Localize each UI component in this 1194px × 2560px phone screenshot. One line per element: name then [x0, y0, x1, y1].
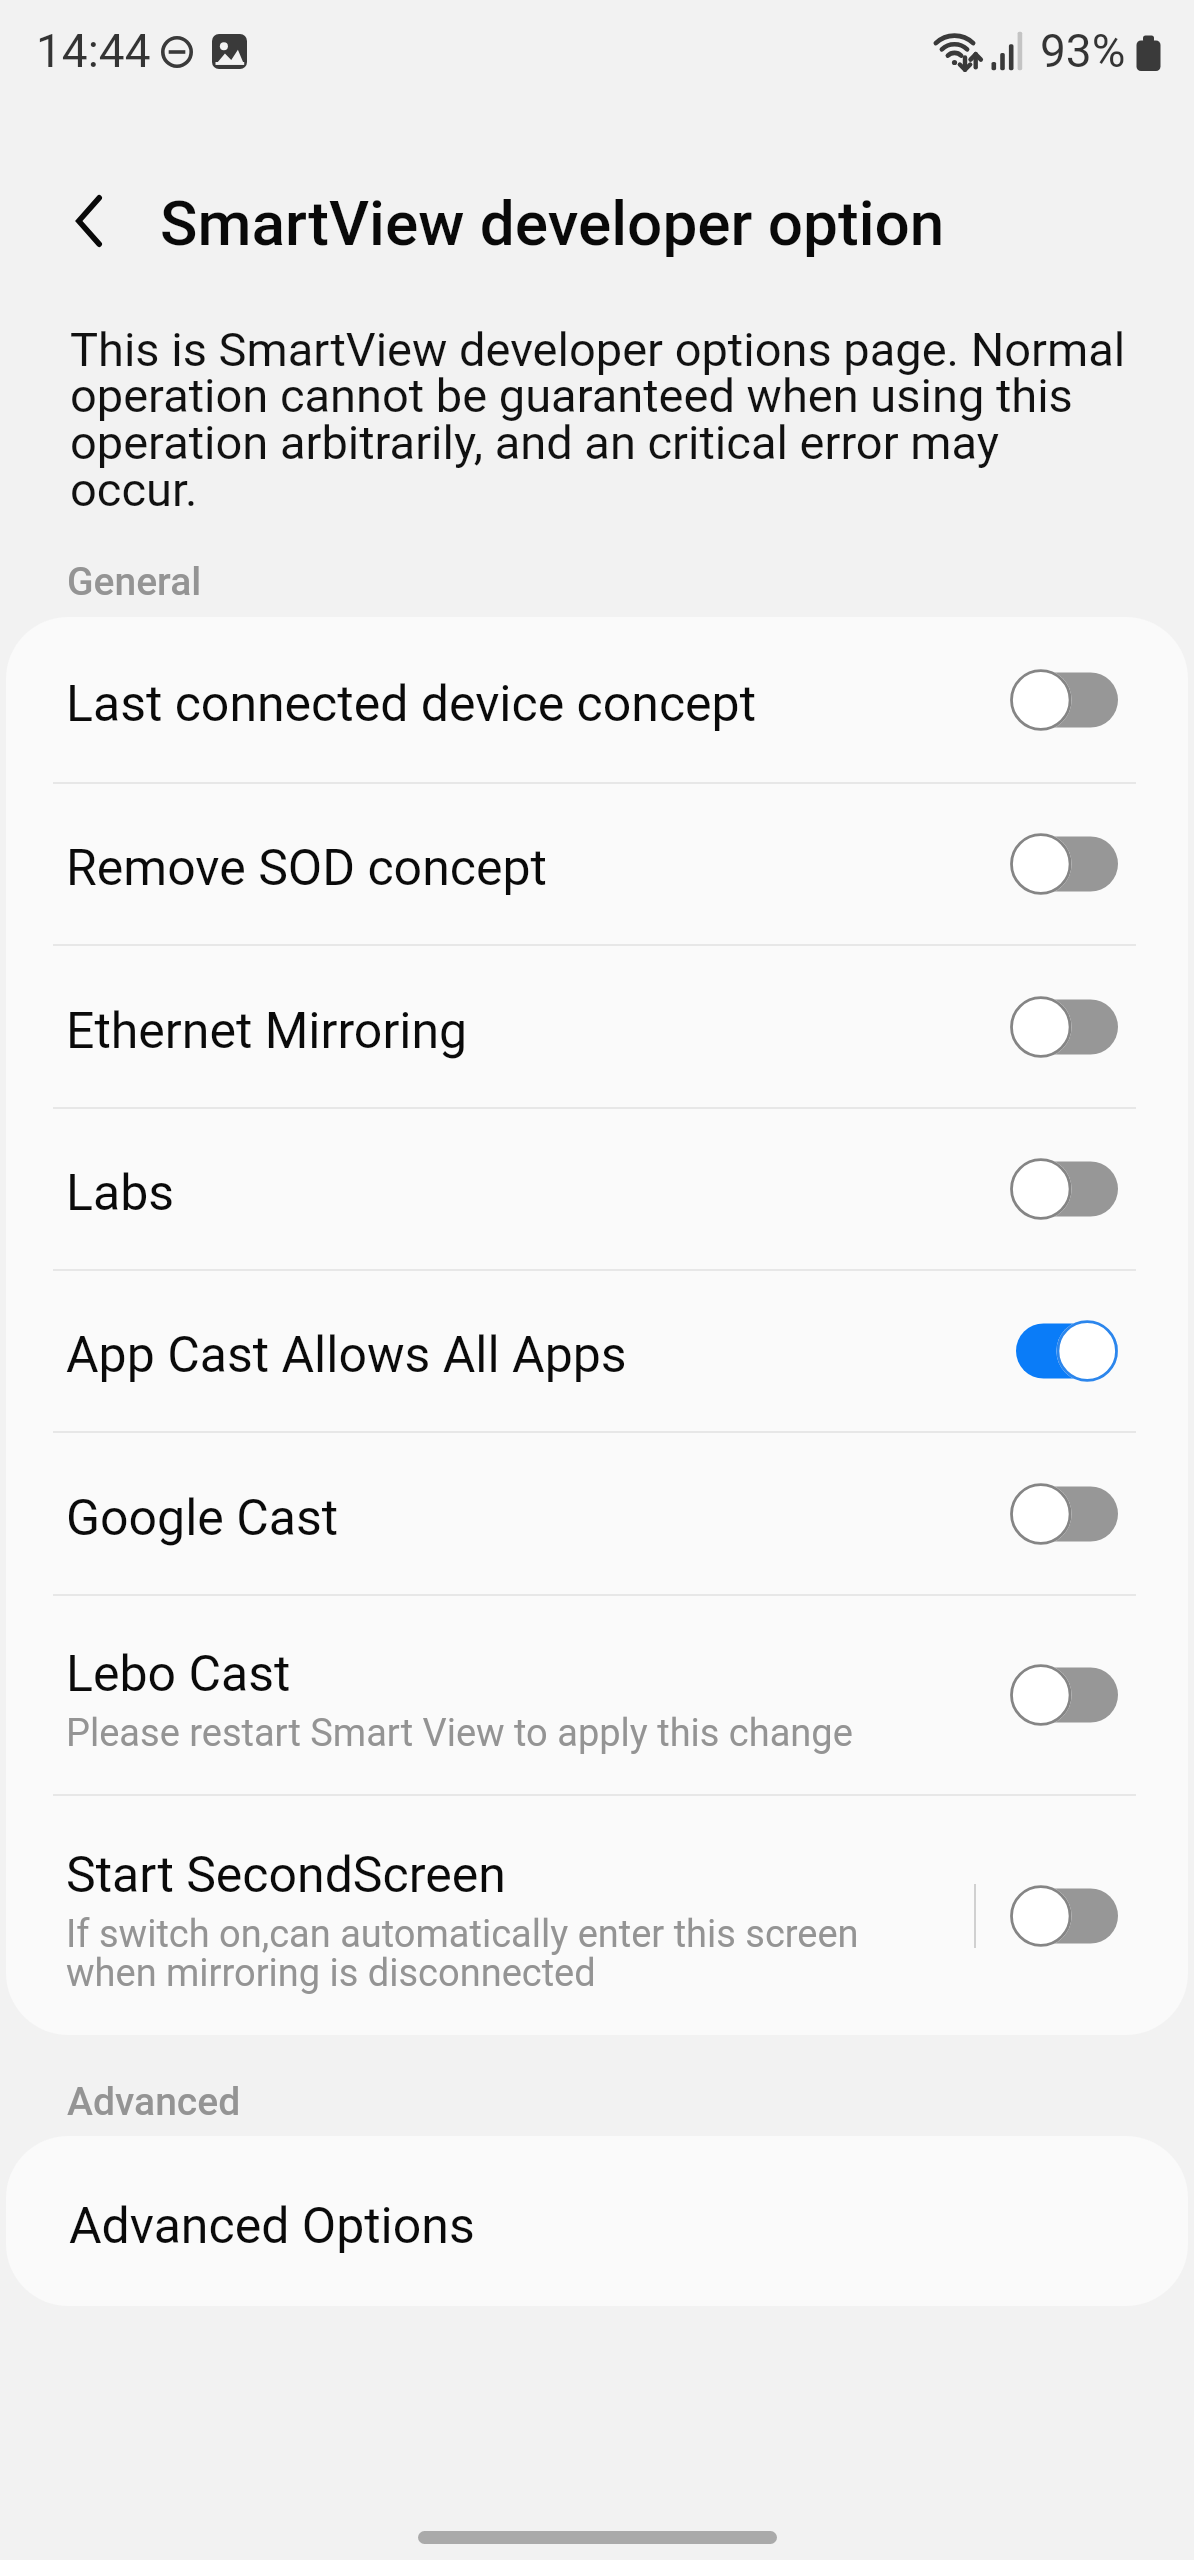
staticText: This is SmartView developer options page… — [70, 322, 1126, 517]
staticText: If switch on,can automatically enter thi… — [66, 1916, 906, 1994]
button[interactable]: Toggle off — [1010, 995, 1118, 1059]
button[interactable]: Toggle off — [1010, 1663, 1118, 1727]
button[interactable]: Toggle off — [1010, 1482, 1118, 1546]
staticText: General — [67, 559, 202, 605]
button[interactable]: Last connected device concept — [6, 617, 1188, 782]
button[interactable]: Toggle on — [1010, 1319, 1118, 1383]
staticText: Labs — [66, 1166, 175, 1222]
button[interactable]: Ethernet Mirroring — [6, 946, 1188, 1107]
staticText: Ethernet Mirroring — [66, 1004, 468, 1060]
staticText: Remove SOD concept — [66, 841, 547, 897]
button[interactable]: Toggle off — [1010, 832, 1118, 896]
staticText: Start SecondScreen — [66, 1848, 506, 1904]
staticText: Advanced — [67, 2079, 241, 2125]
staticText: App Cast Allows All Apps — [66, 1328, 627, 1384]
button[interactable]: App Cast Allows All Apps — [6, 1271, 1188, 1431]
button[interactable]: Toggle off — [1010, 1157, 1118, 1221]
staticText: Last connected device concept — [66, 677, 757, 733]
button[interactable]: Advanced Options — [6, 2136, 1188, 2306]
staticText: Advanced Options — [69, 2197, 475, 2256]
button[interactable]: Back — [42, 174, 136, 268]
staticText: Lebo Cast — [66, 1647, 291, 1703]
button[interactable]: Toggle off — [1010, 668, 1118, 732]
button[interactable]: Start SecondScreen — [6, 1796, 1188, 2035]
staticText: Please restart Smart View to apply this … — [66, 1715, 853, 1754]
staticText: 93% — [1040, 24, 1126, 78]
staticText: Google Cast — [66, 1491, 339, 1547]
button[interactable]: Lebo Cast — [6, 1596, 1188, 1794]
staticText: 14:44 — [36, 24, 151, 78]
button[interactable]: Labs — [6, 1109, 1188, 1269]
button[interactable]: Toggle off — [1010, 1884, 1118, 1948]
staticText: SmartView developer option — [160, 187, 945, 260]
button[interactable]: Remove SOD concept — [6, 784, 1188, 944]
button[interactable]: Google Cast — [6, 1433, 1188, 1594]
